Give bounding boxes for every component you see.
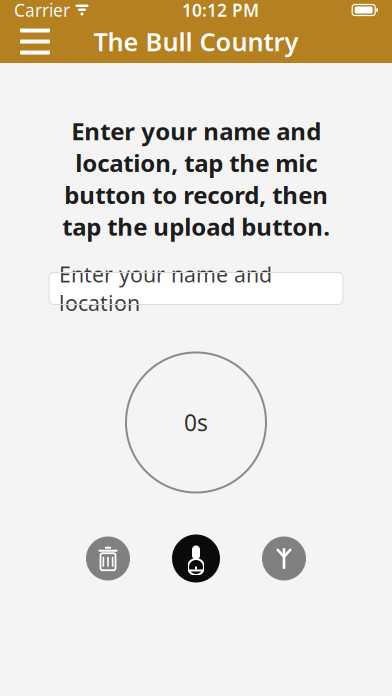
button[interactable]: Upload recording bbox=[260, 534, 308, 582]
staticText: 0s bbox=[184, 407, 208, 437]
button[interactable]: Enter your name and location bbox=[49, 272, 343, 304]
button[interactable]: Menu bbox=[12, 20, 58, 63]
staticText: The Bull Country bbox=[93, 25, 298, 58]
staticText: 10:12 PM bbox=[182, 0, 259, 21]
staticText: Enter your name and location bbox=[59, 260, 272, 317]
staticText: Enter your name and location, tap the mi… bbox=[62, 115, 330, 242]
button[interactable]: Record bbox=[172, 534, 220, 582]
staticText: Carrier bbox=[14, 0, 70, 21]
button[interactable]: Delete recording bbox=[84, 534, 132, 582]
